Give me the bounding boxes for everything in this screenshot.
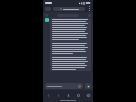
- button[interactable]: [45, 83, 83, 89]
- button[interactable]: Account: [85, 92, 91, 98]
- button[interactable]: [53, 7, 85, 11]
- button[interactable]: More options: [87, 6, 91, 11]
- button[interactable]: Home: [65, 92, 71, 98]
- button[interactable]: Forward: [55, 92, 61, 98]
- button[interactable]: Back: [45, 92, 51, 98]
- button[interactable]: Tabs: [75, 92, 81, 98]
- button[interactable]: Send: [85, 83, 91, 89]
- button[interactable]: [45, 18, 91, 71]
